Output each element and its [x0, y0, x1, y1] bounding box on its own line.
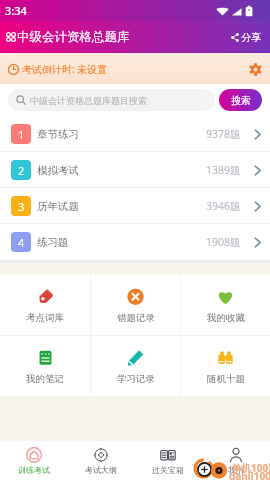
staticText: 1 — [18, 127, 25, 142]
button[interactable]: 考试倒计时: 未设置 — [6, 58, 110, 80]
button[interactable]: 搜索 — [219, 89, 262, 111]
staticText: 训练考试 — [18, 465, 50, 475]
staticText: danji100.com — [229, 469, 270, 480]
staticText: 中级会计资格总题库题目搜索 — [30, 95, 147, 106]
button[interactable]: 3 — [0, 188, 270, 224]
staticText: 1908题 — [206, 235, 241, 249]
button[interactable]: 学习记录 — [91, 336, 180, 396]
staticText: 章节练习 — [37, 128, 79, 141]
staticText: 历年试题 — [37, 200, 79, 213]
staticText: 搜索 — [231, 94, 251, 107]
button[interactable]: 随机十题 — [181, 336, 270, 396]
staticText: 3946题 — [206, 199, 241, 213]
staticText: 学习记录 — [117, 373, 155, 385]
staticText: 错题记录 — [117, 312, 155, 324]
button[interactable]: 我的收藏 — [181, 275, 270, 335]
staticText: 9378题 — [206, 127, 241, 141]
staticText: 单机100网 — [231, 461, 270, 475]
staticText: 4 — [18, 235, 25, 250]
button[interactable]: Settings — [246, 60, 264, 78]
staticText: 中级会计资格总题库 — [17, 29, 130, 45]
staticText: 随机十题 — [207, 373, 245, 385]
staticText: 模拟考试 — [37, 164, 79, 177]
button[interactable]: 4 — [0, 224, 270, 260]
button[interactable]: 我的笔记 — [0, 336, 90, 396]
staticText: 2 — [18, 163, 25, 178]
button[interactable]: 考点词库 — [0, 275, 90, 335]
staticText: 我的笔记 — [26, 373, 64, 385]
staticText: 我的 — [228, 465, 244, 475]
staticText: 分享 — [241, 31, 261, 44]
button[interactable]: 中级会计资格总题库题目搜索 — [8, 89, 215, 111]
staticText: 考试大纲 — [85, 465, 117, 475]
button[interactable]: Share — [229, 28, 263, 47]
button[interactable]: 训练考试 — [0, 441, 67, 480]
staticText: 练习题 — [37, 236, 69, 249]
staticText: 考点词库 — [26, 312, 64, 324]
button[interactable]: 考试大纲 — [67, 441, 134, 480]
button[interactable]: 我的 — [202, 441, 270, 480]
button[interactable]: 2 — [0, 152, 270, 188]
staticText: 我的收藏 — [207, 312, 245, 324]
button[interactable]: 错题记录 — [91, 275, 180, 335]
button[interactable]: 1 — [0, 116, 270, 152]
staticText: 过关宝箱 — [152, 465, 184, 475]
staticText: 3:34 — [5, 3, 27, 18]
button[interactable]: 过关宝箱 — [134, 441, 202, 480]
staticText: 考试倒计时: 未设置 — [22, 62, 108, 76]
staticText: 3 — [18, 199, 25, 214]
staticText: 1389题 — [206, 163, 241, 177]
